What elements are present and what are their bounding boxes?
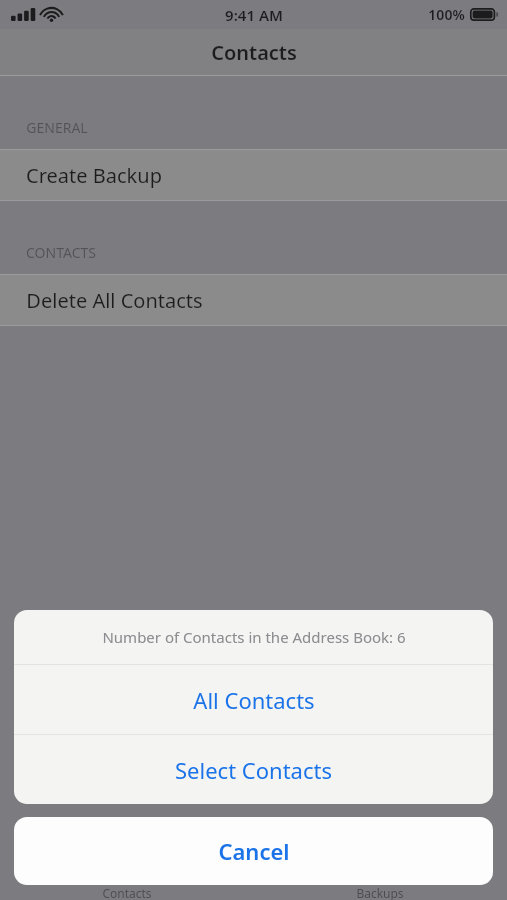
button[interactable]: Cancel [14, 817, 493, 885]
staticText: Contacts [102, 885, 152, 900]
staticText: Delete All Contacts [26, 287, 203, 314]
staticText: GENERAL [26, 118, 88, 137]
button[interactable]: Backups [253, 885, 507, 900]
staticText: 9:41 AM [225, 5, 283, 25]
staticText: Create Backup [26, 162, 162, 189]
button[interactable]: Delete All Contacts [0, 275, 507, 325]
button[interactable]: Select Contacts [14, 735, 493, 804]
staticText: 100% [428, 5, 465, 24]
button[interactable]: Contacts [0, 885, 253, 900]
button[interactable]: Create Backup [0, 150, 507, 200]
staticText: Contacts [211, 39, 297, 66]
staticText: All Contacts [193, 685, 315, 715]
staticText: CONTACTS [26, 243, 96, 262]
staticText: Select Contacts [175, 755, 332, 785]
staticText: Cancel [218, 836, 290, 866]
button[interactable]: All Contacts [14, 665, 493, 734]
staticText: Backups [356, 885, 404, 900]
staticText: Number of Contacts in the Address Book: … [102, 627, 406, 647]
